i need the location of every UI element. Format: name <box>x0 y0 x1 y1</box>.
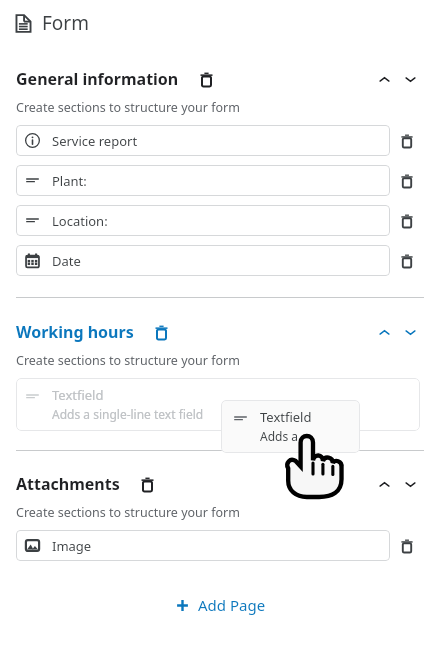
button[interactable]: Delete Service report <box>390 125 424 156</box>
button[interactable]: Delete Plant: <box>390 165 424 196</box>
staticText: Attachments <box>16 473 120 495</box>
button[interactable]: Move section up <box>372 320 396 344</box>
staticText: Date <box>52 252 81 270</box>
staticText: Create sections to structure your form <box>16 99 240 116</box>
staticText: Plant: <box>52 172 87 190</box>
staticText: Textfield <box>52 386 104 404</box>
button[interactable]: Location: <box>16 205 390 236</box>
staticText: Form <box>42 10 89 36</box>
button[interactable]: Image <box>16 530 390 561</box>
staticText: Adds a... <box>260 428 308 444</box>
button[interactable]: Delete Location: <box>390 205 424 236</box>
button[interactable]: Delete Date <box>390 245 424 276</box>
staticText: Location: <box>52 212 108 230</box>
button[interactable]: Move section up <box>372 472 396 496</box>
button[interactable]: Move section down <box>398 320 422 344</box>
staticText: General information <box>16 68 179 90</box>
staticText: Working hours <box>16 321 134 343</box>
button[interactable]: Date <box>16 245 390 276</box>
button[interactable]: Move section down <box>398 472 422 496</box>
button[interactable]: Textfield <box>221 400 360 453</box>
staticText: Create sections to structure your form <box>16 352 240 369</box>
staticText: Adds a single-line text field <box>52 406 204 422</box>
button[interactable]: Move section down <box>398 67 422 91</box>
staticText: Add Page <box>198 595 266 615</box>
button[interactable]: Service report <box>16 125 390 156</box>
button[interactable]: Delete section <box>134 471 160 497</box>
button[interactable]: Move section up <box>372 67 396 91</box>
staticText: Image <box>52 537 92 555</box>
button[interactable]: Add Page <box>165 590 276 620</box>
button[interactable]: Delete section <box>148 319 174 345</box>
button[interactable]: Textfield <box>16 378 420 431</box>
button[interactable]: Delete section <box>193 66 219 92</box>
staticText: Create sections to structure your form <box>16 504 240 521</box>
staticText: Service report <box>52 132 138 150</box>
staticText: Textfield <box>260 408 312 426</box>
button[interactable]: Plant: <box>16 165 390 196</box>
button[interactable]: Delete Image <box>390 530 424 561</box>
